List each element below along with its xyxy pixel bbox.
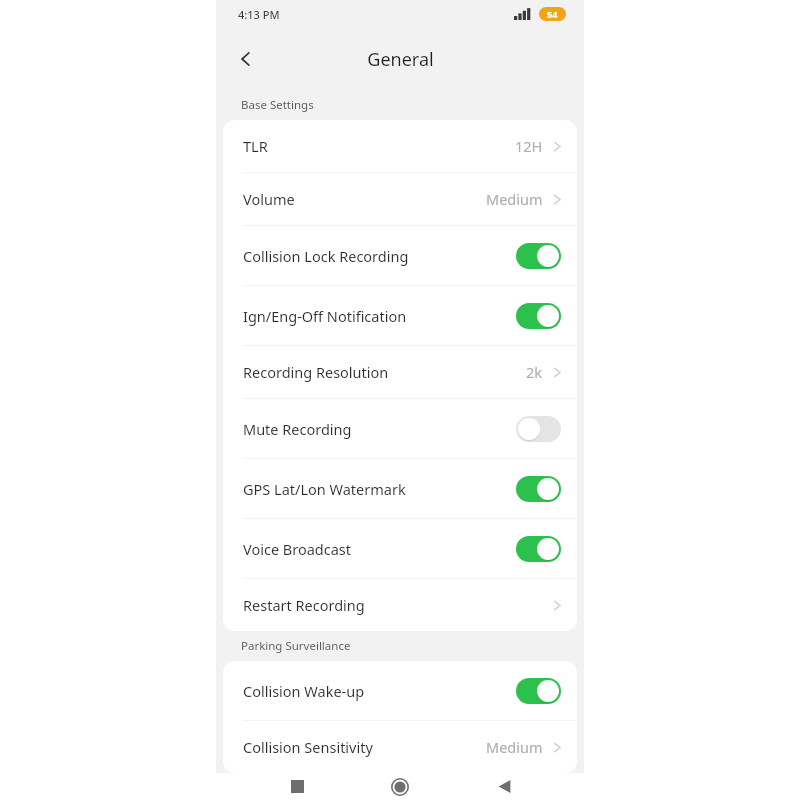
staticText: Parking Surveillance — [241, 638, 351, 654]
button[interactable]: Recents — [274, 773, 320, 800]
button[interactable]: Back — [224, 37, 268, 81]
staticText: GPS Lat/Lon Watermark — [243, 479, 516, 499]
button[interactable]: Back — [481, 773, 527, 800]
staticText: 4:13 PM — [238, 7, 280, 22]
button[interactable]: Collision Lock Recording — [223, 226, 577, 285]
staticText: TLR — [243, 136, 515, 156]
button[interactable]: GPS Lat/Lon Watermark — [223, 459, 577, 518]
staticText: 54 — [547, 8, 558, 20]
button[interactable]: TLR — [223, 120, 577, 172]
staticText: 12H — [515, 136, 543, 156]
button[interactable]: Recording Resolution — [223, 346, 577, 398]
button[interactable]: Ign/Eng-Off Notification — [223, 286, 577, 345]
staticText: Recording Resolution — [243, 362, 526, 382]
staticText: Collision Wake-up — [243, 681, 516, 701]
button[interactable]: On — [516, 536, 561, 562]
button[interactable]: On — [516, 678, 561, 704]
staticText: Collision Sensitivity — [243, 737, 486, 757]
button[interactable]: Off — [516, 416, 561, 442]
button[interactable]: On — [516, 303, 561, 329]
button[interactable]: On — [516, 476, 561, 502]
button[interactable]: Volume — [223, 173, 577, 225]
button[interactable]: Collision Sensitivity — [223, 721, 577, 773]
staticText: Ign/Eng-Off Notification — [243, 306, 516, 326]
staticText: Volume — [243, 189, 486, 209]
button[interactable]: On — [516, 243, 561, 269]
staticText: Medium — [486, 737, 543, 757]
button[interactable]: Collision Wake-up — [223, 661, 577, 720]
button[interactable]: Restart Recording — [223, 579, 577, 631]
staticText: Collision Lock Recording — [243, 246, 516, 266]
staticText: Voice Broadcast — [243, 539, 516, 559]
button[interactable]: Voice Broadcast — [223, 519, 577, 578]
button[interactable]: Home — [377, 773, 423, 800]
staticText: Medium — [486, 189, 543, 209]
staticText: General — [367, 47, 434, 72]
staticText: Mute Recording — [243, 419, 516, 439]
button[interactable]: Mute Recording — [223, 399, 577, 458]
staticText: Base Settings — [241, 97, 314, 113]
staticText: Restart Recording — [243, 595, 552, 615]
staticText: 2k — [526, 362, 543, 382]
